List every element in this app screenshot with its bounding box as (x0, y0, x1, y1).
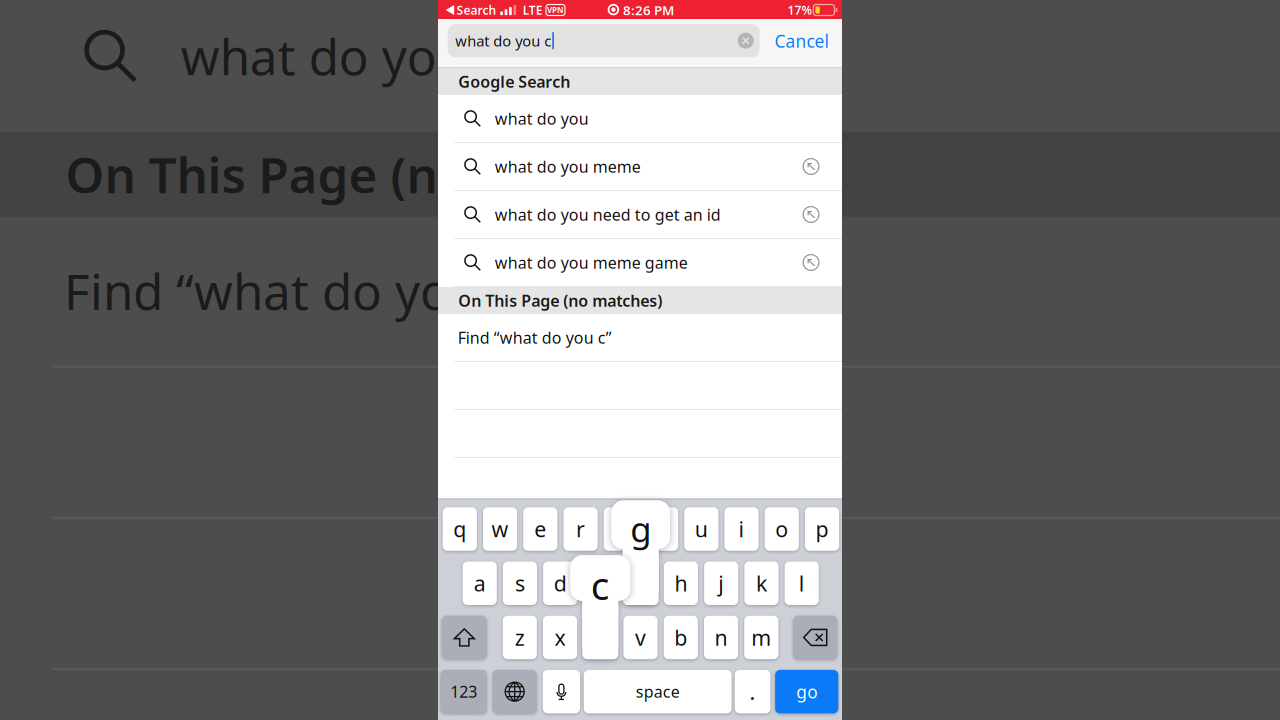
staticText: i (739, 515, 745, 543)
button[interactable]: what do you meme game (438, 239, 842, 287)
button[interactable]: s (503, 561, 537, 605)
staticText: what do you c (455, 31, 551, 50)
button[interactable]: h (664, 561, 698, 605)
button[interactable]: Shift (442, 616, 487, 659)
staticText: Cancel (774, 29, 828, 52)
button[interactable]: i (724, 507, 759, 551)
staticText: k (756, 569, 767, 597)
button[interactable]: what do you (438, 95, 842, 143)
button[interactable]: t (604, 507, 638, 551)
button[interactable]: m (744, 616, 778, 659)
staticText: On This Page (no matches) (458, 290, 662, 311)
staticText: o (775, 515, 788, 543)
staticText: c (591, 559, 610, 611)
staticText: go (796, 680, 817, 703)
button[interactable]: k (744, 561, 778, 605)
button[interactable]: what do you meme (438, 143, 842, 191)
button[interactable]: e (523, 507, 557, 551)
button[interactable]: j (704, 561, 738, 605)
staticText: g (630, 506, 651, 552)
button[interactable]: g (624, 561, 658, 605)
staticText: what do you meme game (495, 252, 688, 273)
staticText: Find “what do you c” (458, 327, 612, 348)
staticText: 17% (787, 2, 812, 18)
staticText: b (674, 623, 687, 652)
staticText: what do you meme (495, 156, 641, 177)
staticText: u (695, 515, 708, 543)
staticText: e (534, 515, 546, 543)
button[interactable]: q (443, 507, 477, 551)
button[interactable]: 123 (440, 670, 487, 713)
button[interactable]: c (583, 616, 617, 659)
staticText: s (515, 569, 525, 597)
staticText: n (715, 623, 728, 652)
staticText: x (555, 623, 566, 652)
button[interactable]: f (583, 561, 618, 605)
staticText: what do you (495, 108, 589, 129)
staticText: h (674, 569, 687, 597)
staticText: Find “what do you c” (64, 258, 536, 323)
button[interactable]: b (664, 616, 698, 659)
staticText: q (453, 515, 466, 543)
button[interactable]: space (584, 670, 732, 713)
staticText: p (816, 515, 829, 543)
staticText: a (474, 569, 486, 597)
staticText: m (751, 623, 771, 652)
staticText: z (515, 623, 525, 652)
staticText: j (718, 569, 724, 597)
staticText: VPN (547, 5, 564, 15)
button[interactable]: v (623, 616, 658, 659)
staticText: space (636, 681, 680, 702)
button[interactable]: d (543, 561, 577, 605)
staticText: what do you meme game (181, 23, 773, 89)
button[interactable]: z (503, 616, 537, 659)
button[interactable]: u (684, 507, 718, 551)
staticText: 8:26 PM (623, 1, 674, 19)
button[interactable]: o (765, 507, 799, 551)
button[interactable]: r (563, 507, 598, 551)
staticText: LTE (523, 2, 543, 18)
button[interactable]: Next keyboard (493, 670, 537, 713)
button[interactable]: p (805, 507, 839, 551)
button[interactable]: what do you need to get an id (438, 191, 842, 239)
staticText: Google Search (458, 71, 570, 92)
button[interactable]: Dictation (543, 670, 580, 713)
button[interactable]: go (775, 670, 838, 713)
button[interactable]: l (785, 561, 819, 605)
staticText: f (597, 569, 604, 597)
staticText: 123 (450, 681, 477, 702)
button[interactable]: Find “what do you c” (438, 314, 842, 362)
staticText: w (492, 515, 509, 543)
button[interactable]: y (644, 507, 678, 551)
staticText: . (750, 677, 756, 706)
staticText: On This Page (no matches) (65, 141, 701, 207)
button[interactable]: a (463, 561, 497, 605)
button[interactable]: n (704, 616, 738, 659)
staticText: l (799, 569, 805, 597)
button[interactable]: w (483, 507, 517, 551)
staticText: what do you need to get an id (495, 204, 721, 225)
staticText: v (635, 623, 646, 652)
button[interactable]: . (735, 670, 770, 713)
staticText: r (576, 515, 585, 543)
button[interactable]: Cancel (762, 21, 840, 61)
button[interactable]: x (543, 616, 577, 659)
staticText: d (554, 569, 567, 597)
button[interactable]: Delete (793, 616, 837, 659)
staticText: Search (456, 2, 496, 18)
